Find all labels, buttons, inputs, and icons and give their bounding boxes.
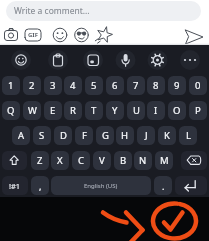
staticText: 9 bbox=[174, 79, 180, 92]
staticText: H bbox=[121, 129, 129, 142]
staticText: O bbox=[173, 104, 181, 117]
button[interactable]: W bbox=[23, 101, 41, 120]
button[interactable]: B bbox=[114, 151, 132, 170]
button[interactable]: C bbox=[72, 151, 90, 170]
staticText: C bbox=[78, 154, 85, 167]
staticText: U bbox=[133, 104, 140, 117]
staticText: Write a comment... bbox=[14, 5, 90, 17]
button[interactable]: 2 bbox=[23, 76, 41, 95]
button[interactable]: U bbox=[127, 101, 145, 120]
button[interactable]: A bbox=[12, 126, 30, 145]
staticText: J bbox=[145, 129, 148, 142]
staticText: M bbox=[160, 154, 169, 167]
button[interactable]: M bbox=[155, 151, 173, 170]
button[interactable] bbox=[105, 50, 138, 72]
button[interactable] bbox=[22, 25, 42, 45]
staticText: A bbox=[18, 129, 25, 142]
button[interactable] bbox=[82, 25, 102, 45]
button[interactable]: K bbox=[158, 126, 176, 145]
button[interactable] bbox=[152, 202, 192, 240]
staticText: Z bbox=[37, 154, 43, 167]
button[interactable]: 1 bbox=[2, 76, 20, 95]
staticText: D bbox=[60, 129, 67, 142]
button[interactable]: , bbox=[31, 176, 49, 195]
staticText: P bbox=[195, 104, 201, 117]
staticText: GIF bbox=[28, 31, 38, 39]
button[interactable]: J bbox=[137, 126, 155, 145]
button[interactable]: S bbox=[33, 126, 51, 145]
button[interactable]: N bbox=[134, 151, 152, 170]
button[interactable]: F bbox=[75, 126, 93, 145]
staticText: . bbox=[162, 180, 165, 192]
staticText: G bbox=[102, 129, 109, 142]
staticText: !#1 bbox=[9, 181, 21, 191]
button[interactable] bbox=[175, 176, 207, 195]
staticText: 4 bbox=[70, 79, 76, 92]
staticText: E bbox=[50, 104, 56, 117]
staticText: 5 bbox=[91, 79, 97, 92]
button[interactable] bbox=[181, 151, 207, 170]
button[interactable]: D bbox=[54, 126, 72, 145]
button[interactable] bbox=[2, 25, 22, 45]
staticText: X bbox=[57, 154, 63, 167]
staticText: 1 bbox=[8, 79, 14, 92]
button[interactable]: R bbox=[64, 101, 82, 120]
button[interactable]: X bbox=[51, 151, 69, 170]
button[interactable]: 4 bbox=[64, 76, 82, 95]
button[interactable]: Z bbox=[31, 151, 49, 170]
button[interactable]: 8 bbox=[147, 76, 165, 95]
staticText: B bbox=[120, 154, 127, 167]
staticText: R bbox=[70, 104, 76, 117]
staticText: 8 bbox=[153, 79, 159, 92]
staticText: 2 bbox=[29, 79, 35, 92]
button[interactable] bbox=[72, 50, 105, 72]
button[interactable] bbox=[171, 50, 204, 72]
button[interactable]: I bbox=[147, 101, 165, 120]
button[interactable] bbox=[138, 50, 171, 72]
button[interactable]: T bbox=[85, 101, 103, 120]
staticText: F bbox=[82, 129, 87, 142]
button[interactable]: 7 bbox=[127, 76, 145, 95]
button[interactable]: L bbox=[179, 126, 197, 145]
button[interactable]: H bbox=[116, 126, 134, 145]
staticText: N bbox=[139, 154, 147, 167]
staticText: V bbox=[99, 154, 105, 167]
button[interactable]: . bbox=[154, 176, 172, 195]
staticText: , bbox=[39, 180, 42, 192]
button[interactable]: 5 bbox=[85, 76, 103, 95]
staticText: W bbox=[28, 104, 37, 117]
button[interactable] bbox=[2, 151, 27, 170]
button[interactable] bbox=[42, 25, 62, 45]
staticText: Y bbox=[112, 104, 118, 117]
staticText: T bbox=[91, 104, 97, 117]
button[interactable]: 3 bbox=[44, 76, 62, 95]
button[interactable]: O bbox=[168, 101, 186, 120]
button[interactable]: E bbox=[44, 101, 62, 120]
button[interactable]: P bbox=[189, 101, 207, 120]
button[interactable]: English (US) bbox=[51, 176, 151, 195]
button[interactable] bbox=[62, 25, 82, 45]
button[interactable]: !#1 bbox=[2, 176, 28, 195]
staticText: English (US) bbox=[84, 182, 118, 190]
staticText: S bbox=[39, 129, 45, 142]
staticText: 3 bbox=[50, 79, 56, 92]
staticText: 6 bbox=[112, 79, 118, 92]
button[interactable]: Write a comment... bbox=[6, 1, 201, 21]
staticText: Q bbox=[7, 104, 15, 117]
button[interactable] bbox=[6, 50, 39, 72]
button[interactable]: G bbox=[96, 126, 114, 145]
staticText: K bbox=[164, 129, 170, 142]
button[interactable]: V bbox=[93, 151, 111, 170]
staticText: 7 bbox=[133, 79, 139, 92]
button[interactable]: 6 bbox=[106, 76, 124, 95]
staticText: I bbox=[154, 104, 158, 117]
button[interactable]: Q bbox=[2, 101, 20, 120]
staticText: L bbox=[186, 129, 191, 142]
button[interactable] bbox=[39, 50, 72, 72]
button[interactable] bbox=[184, 27, 204, 47]
button[interactable]: 9 bbox=[168, 76, 186, 95]
button[interactable]: Y bbox=[106, 101, 124, 120]
staticText: 0 bbox=[195, 79, 201, 92]
button[interactable]: 0 bbox=[189, 76, 207, 95]
